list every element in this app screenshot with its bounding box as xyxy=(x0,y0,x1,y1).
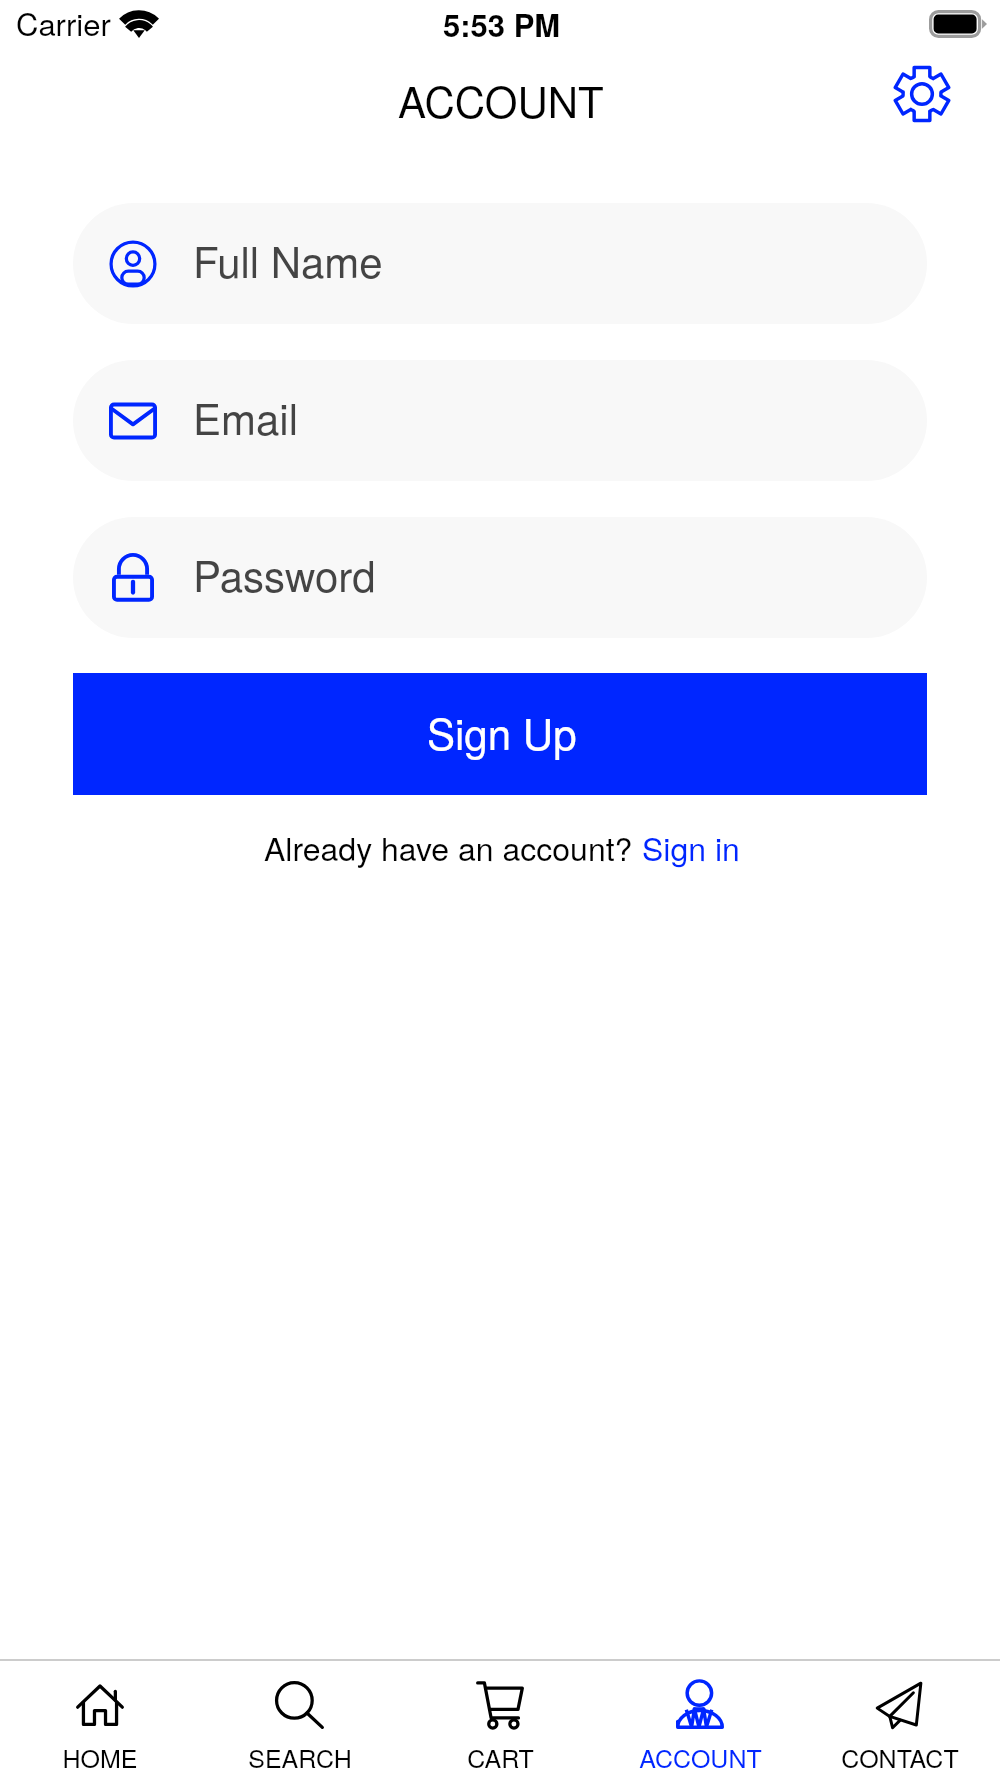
button[interactable]: Sign Up xyxy=(73,673,927,795)
button[interactable]: Full Name xyxy=(73,203,927,324)
staticText: Full Name xyxy=(193,230,383,290)
button[interactable]: CART xyxy=(400,1661,600,1778)
staticText: Email xyxy=(193,387,299,447)
button[interactable]: HOME xyxy=(0,1661,200,1778)
button[interactable]: Email xyxy=(73,360,927,481)
button[interactable]: Password xyxy=(73,517,927,638)
staticText: HOME xyxy=(62,1739,138,1775)
staticText: SEARCH xyxy=(248,1739,352,1775)
button[interactable]: Sign in xyxy=(642,824,740,870)
staticText: 5:53 PM xyxy=(443,2,561,46)
staticText: Carrier xyxy=(16,0,111,44)
staticText: Already have an account? xyxy=(264,824,642,870)
button[interactable]: SEARCH xyxy=(200,1661,400,1778)
staticText: Sign Up xyxy=(427,702,577,762)
staticText: Password xyxy=(193,544,376,604)
button[interactable]: ACCOUNT xyxy=(600,1661,800,1778)
staticText: Sign in xyxy=(642,824,740,870)
button[interactable]: CONTACT xyxy=(800,1661,1000,1778)
staticText: ACCOUNT xyxy=(639,1739,762,1775)
staticText: CART xyxy=(467,1739,534,1775)
staticText: CONTACT xyxy=(841,1739,959,1775)
staticText: ACCOUNT xyxy=(398,70,604,130)
button[interactable]: Settings xyxy=(890,62,954,126)
